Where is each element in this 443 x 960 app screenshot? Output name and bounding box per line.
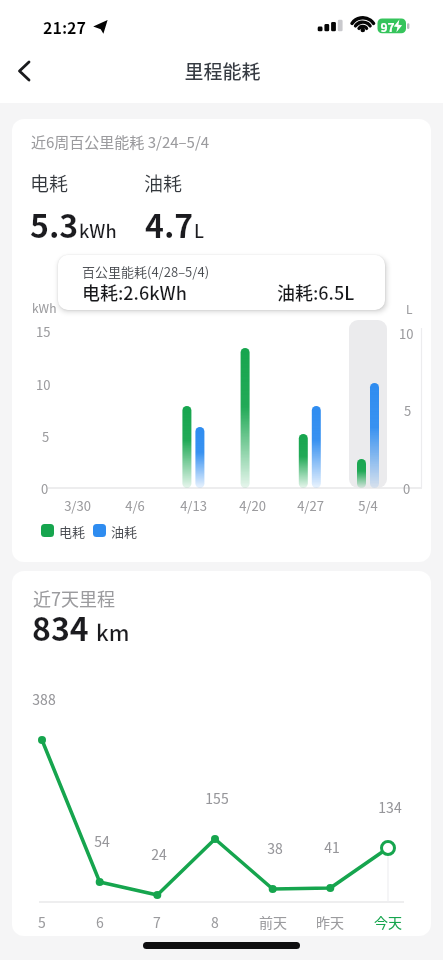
button[interactable] xyxy=(12,571,431,936)
staticText: 21:27 xyxy=(43,15,86,38)
staticText: 5.3 xyxy=(30,201,79,247)
staticText: 15 xyxy=(36,322,51,341)
staticText: 10 xyxy=(399,324,414,343)
staticText: 5 xyxy=(38,912,46,932)
staticText: 油耗 xyxy=(111,522,138,541)
staticText: 4/27 xyxy=(297,496,324,515)
staticText: 电耗 xyxy=(30,169,69,197)
button[interactable] xyxy=(12,119,431,562)
staticText: 电耗 xyxy=(59,522,86,541)
staticText: 155 xyxy=(205,788,229,808)
staticText: 油耗 xyxy=(144,169,183,197)
staticText: 388 xyxy=(32,689,56,709)
staticText: 前天 xyxy=(259,912,287,932)
staticText: 8 xyxy=(211,912,219,932)
staticText: 10 xyxy=(36,375,51,394)
staticText: 3/30 xyxy=(64,496,91,515)
staticText: L xyxy=(194,217,205,243)
staticText: L xyxy=(406,300,413,317)
staticText: 0 xyxy=(41,479,49,498)
staticText: 24 xyxy=(151,844,167,864)
staticText: km xyxy=(96,615,130,647)
staticText: 今天 xyxy=(374,912,402,932)
staticText: 134 xyxy=(378,797,402,817)
staticText: kWh xyxy=(79,217,117,243)
staticText: 4/13 xyxy=(180,496,207,515)
staticText: 0 xyxy=(403,479,411,498)
staticText: 5 xyxy=(42,427,50,446)
staticText: 54 xyxy=(94,831,110,851)
staticText: 38 xyxy=(267,838,283,858)
staticText: 昨天 xyxy=(316,912,344,932)
staticText: 5/4 xyxy=(358,496,378,515)
staticText: 近7天里程 xyxy=(33,585,115,611)
staticText: 6 xyxy=(96,912,104,932)
staticText: 油耗:6.5L xyxy=(277,279,355,305)
staticText: 4/20 xyxy=(239,496,266,515)
staticText: 百公里能耗(4/28–5/4) xyxy=(82,262,210,281)
button[interactable] xyxy=(6,54,46,90)
staticText: 4.7 xyxy=(145,201,194,247)
staticText: 5 xyxy=(404,401,412,420)
staticText: 834 xyxy=(32,604,89,650)
staticText: 7 xyxy=(153,912,161,932)
staticText: 近6周百公里能耗 3/24–5/4 xyxy=(31,131,210,153)
staticText: 里程能耗 xyxy=(184,57,261,85)
staticText: 4/6 xyxy=(125,496,145,515)
staticText: 电耗:2.6kWh xyxy=(82,279,187,305)
staticText: 41 xyxy=(324,837,340,857)
staticText: 97 xyxy=(380,18,395,35)
staticText: kWh xyxy=(32,299,57,316)
